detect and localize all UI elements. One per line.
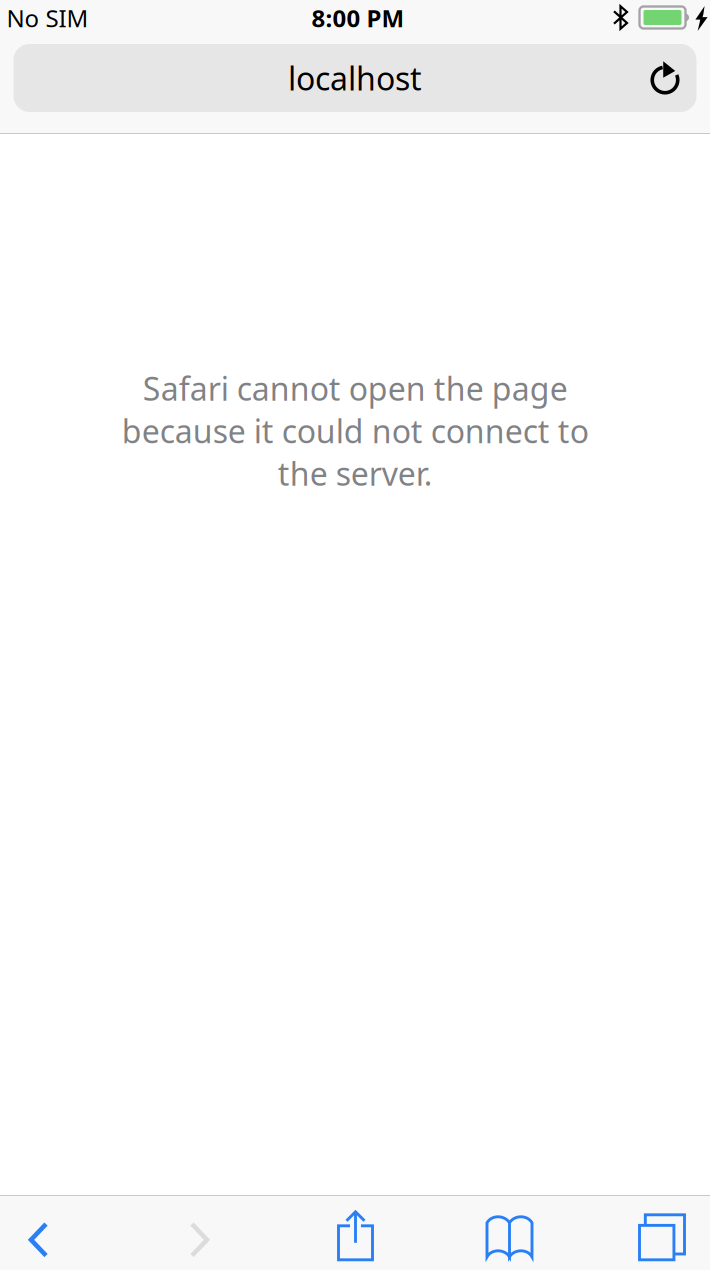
button[interactable]: Back (0, 1202, 98, 1270)
button[interactable]: localhost (13, 44, 696, 112)
staticText: localhost (288, 57, 422, 99)
button[interactable]: Share (295, 1198, 415, 1270)
button[interactable]: Tabs (602, 1200, 710, 1270)
staticText: No SIM (6, 2, 88, 34)
button[interactable]: Reload (636, 51, 694, 109)
button[interactable]: Bookmarks (449, 1198, 569, 1270)
staticText: 8:00 PM (311, 2, 404, 34)
button[interactable]: Forward (139, 1202, 259, 1270)
staticText: Safari cannot open the page because it c… (121, 367, 588, 494)
